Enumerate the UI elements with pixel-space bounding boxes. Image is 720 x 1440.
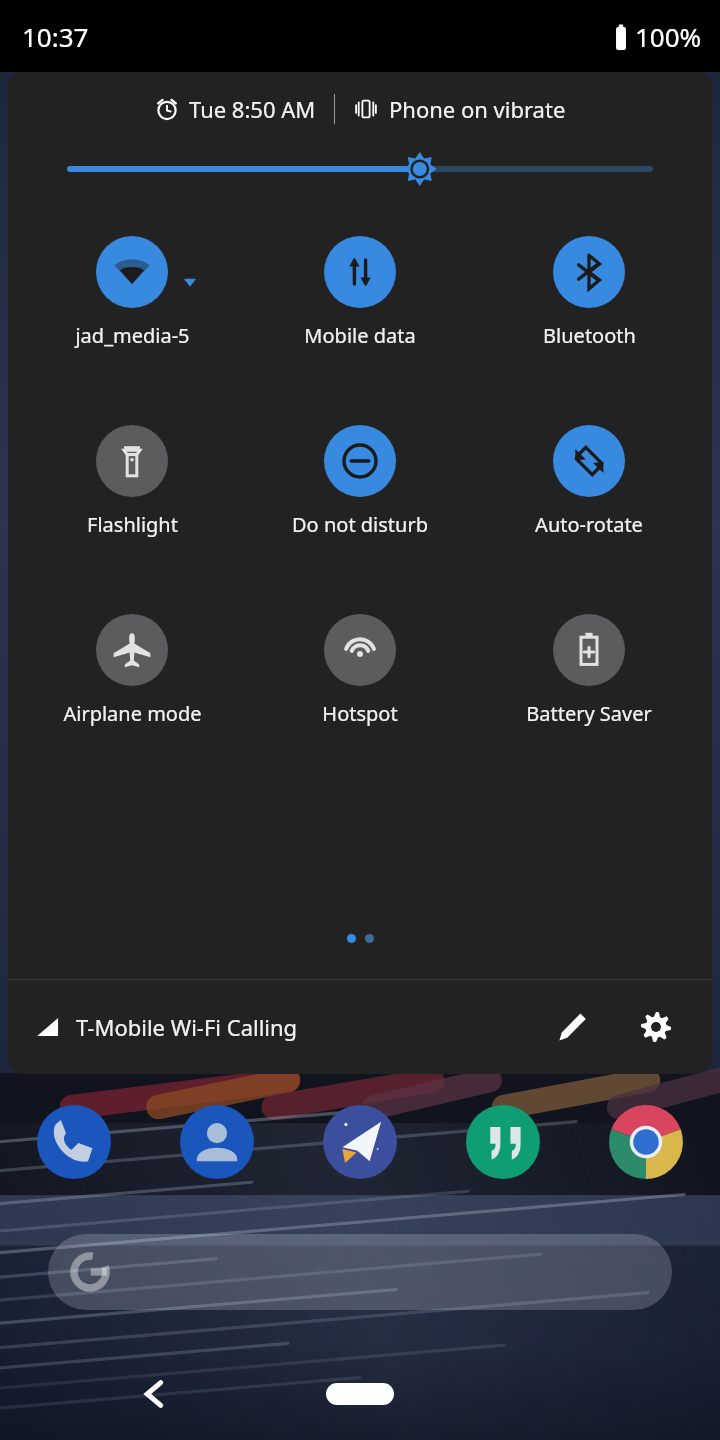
staticText: Auto-rotate bbox=[535, 511, 643, 538]
button[interactable]: Contacts bbox=[173, 1098, 261, 1186]
staticText: Mobile data bbox=[304, 322, 416, 349]
staticText: Do not disturb bbox=[292, 511, 428, 538]
button[interactable]: Back bbox=[125, 1364, 185, 1424]
button[interactable]: Settings bbox=[628, 999, 684, 1055]
staticText: Battery Saver bbox=[526, 700, 652, 727]
button[interactable]: Chrome bbox=[602, 1098, 690, 1186]
button[interactable]: Flashlight bbox=[27, 425, 237, 538]
button[interactable]: Do not disturb bbox=[255, 425, 465, 538]
button[interactable]: Auto-rotate bbox=[484, 425, 694, 538]
button[interactable]: Hotspot bbox=[255, 614, 465, 727]
button[interactable]: Brightness bbox=[8, 146, 712, 192]
staticText: Tue 8:50 AM bbox=[189, 94, 316, 124]
staticText: Phone on vibrate bbox=[389, 94, 566, 124]
button[interactable]: Bluetooth bbox=[484, 236, 694, 349]
staticText: Bluetooth bbox=[543, 322, 636, 349]
staticText: 100% bbox=[635, 19, 702, 54]
button[interactable]: Airplane mode bbox=[27, 614, 237, 727]
button[interactable]: Battery Saver bbox=[484, 614, 694, 727]
button[interactable]: Mobile data bbox=[255, 236, 465, 349]
staticText: 10:37 bbox=[22, 19, 89, 54]
button[interactable]: Home bbox=[326, 1383, 394, 1405]
button[interactable]: Search bbox=[48, 1234, 672, 1310]
staticText: Hotspot bbox=[322, 700, 398, 727]
staticText: T-Mobile Wi-Fi Calling bbox=[76, 1012, 298, 1042]
button[interactable]: Messages bbox=[316, 1098, 404, 1186]
button[interactable]: Phone bbox=[30, 1098, 118, 1186]
staticText: Airplane mode bbox=[63, 700, 202, 727]
staticText: Flashlight bbox=[87, 511, 178, 538]
staticText: jad_media-5 bbox=[75, 322, 190, 349]
button[interactable]: jad_media-5 bbox=[27, 236, 237, 349]
button[interactable]: Hangouts bbox=[459, 1098, 547, 1186]
button[interactable]: Edit tiles bbox=[544, 999, 600, 1055]
